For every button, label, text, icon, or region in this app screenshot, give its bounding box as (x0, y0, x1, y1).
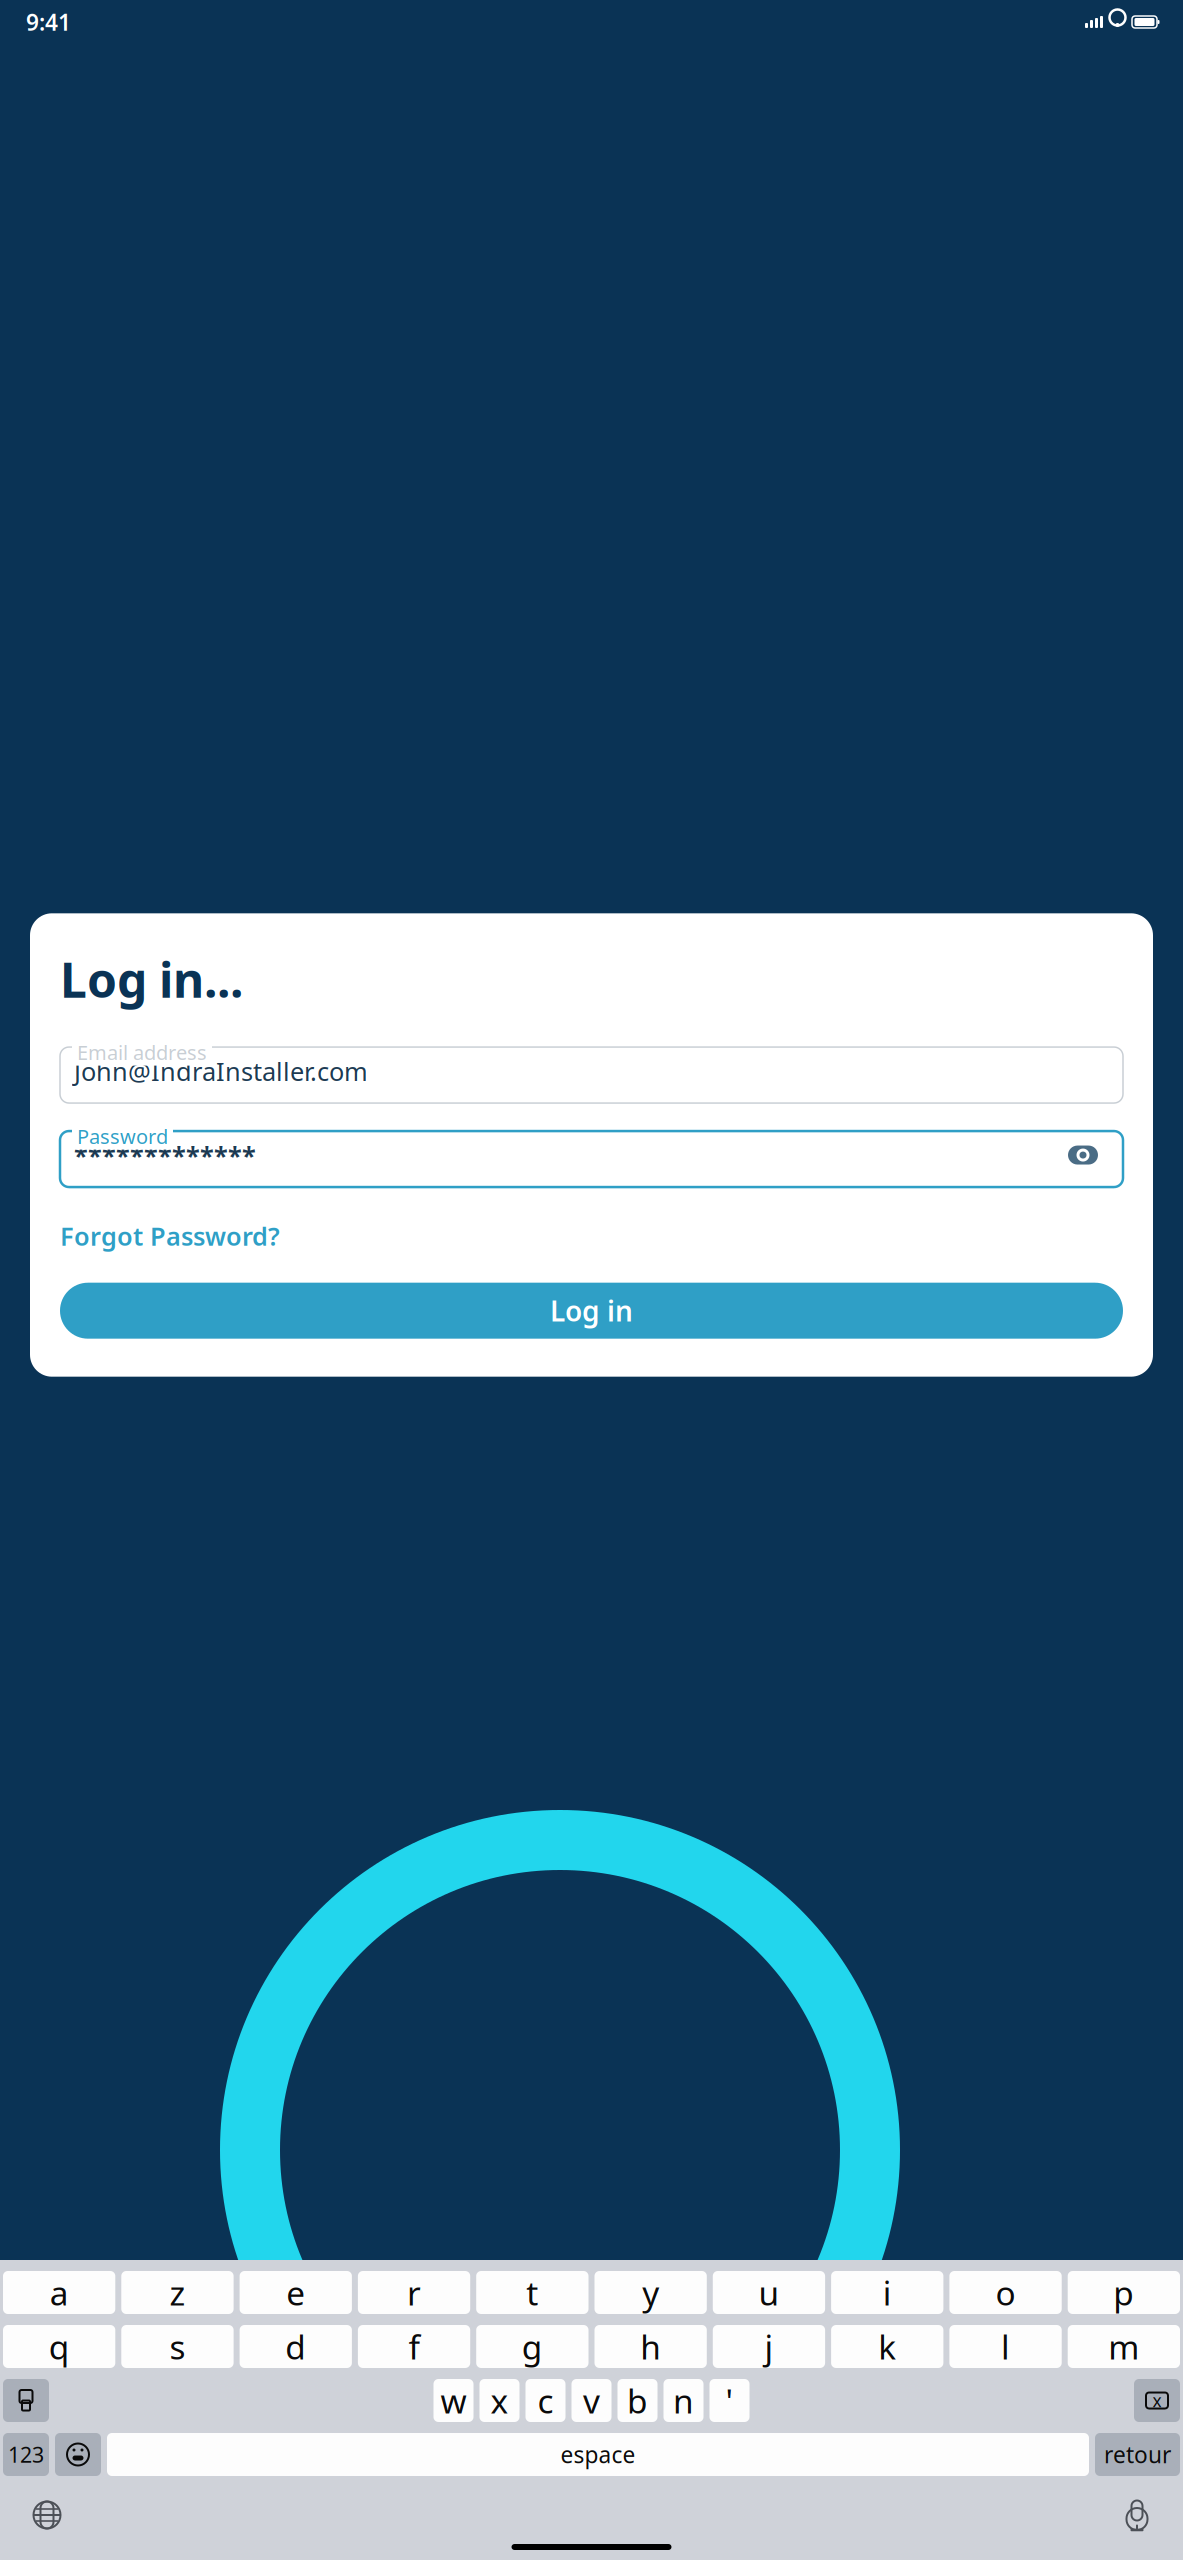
staticText: Forgot Password? (60, 1219, 280, 1253)
button[interactable]: u (713, 2271, 825, 2314)
staticText: l (1001, 2324, 1010, 2369)
button[interactable]: h (594, 2325, 707, 2368)
staticText: espace (560, 2439, 635, 2469)
button[interactable]: g (476, 2325, 588, 2368)
button[interactable]: i (831, 2271, 943, 2314)
staticText: t (526, 2270, 538, 2315)
button[interactable]: s (121, 2325, 234, 2368)
staticText: d (285, 2324, 306, 2369)
button[interactable]: z (121, 2271, 234, 2314)
staticText: c (537, 2378, 553, 2423)
button[interactable]: b (617, 2379, 657, 2422)
staticText: f (409, 2324, 420, 2369)
button[interactable]: Shift (3, 2379, 49, 2422)
button[interactable]: d (240, 2325, 352, 2368)
button[interactable]: j (713, 2325, 825, 2368)
button[interactable]: Emoji (55, 2433, 101, 2476)
staticText: x (1152, 2389, 1161, 2412)
staticText: s (169, 2324, 185, 2369)
staticText: j (764, 2324, 773, 2369)
button[interactable]: Forgot Password? (60, 1213, 280, 1259)
button[interactable]: e (240, 2271, 352, 2314)
button[interactable]: n (663, 2379, 703, 2422)
button[interactable]: r (358, 2271, 470, 2314)
button[interactable]: c (525, 2379, 565, 2422)
button[interactable]: o (949, 2271, 1062, 2314)
button[interactable]: w (433, 2379, 473, 2422)
staticText: w (440, 2378, 466, 2423)
button[interactable]: v (571, 2379, 611, 2422)
staticText: Log in... (60, 947, 243, 1011)
staticText: 123 (8, 2440, 44, 2469)
staticText: r (407, 2270, 421, 2315)
button[interactable]: x (479, 2379, 519, 2422)
button[interactable]: q (3, 2325, 115, 2368)
staticText: retour (1104, 2439, 1171, 2469)
button[interactable]: f (358, 2325, 470, 2368)
staticText: ************* (74, 1138, 256, 1172)
staticText: a (50, 2270, 69, 2315)
staticText: Log in (550, 1292, 633, 1329)
button[interactable]: ' (709, 2379, 749, 2422)
button[interactable]: k (831, 2325, 943, 2368)
staticText: n (673, 2378, 694, 2423)
button[interactable]: 123 (3, 2433, 49, 2476)
staticText: i (883, 2270, 892, 2315)
button[interactable]: Next keyboard (24, 2492, 70, 2538)
button[interactable]: Backspace (1134, 2379, 1180, 2422)
button[interactable]: a (3, 2271, 115, 2314)
staticText: ' (725, 2378, 733, 2423)
staticText: Email address (77, 1039, 207, 1066)
staticText: q (49, 2324, 70, 2369)
staticText: y (642, 2270, 659, 2315)
staticText: u (758, 2270, 779, 2315)
staticText: e (286, 2270, 305, 2315)
button[interactable]: m (1068, 2325, 1180, 2368)
button[interactable]: y (594, 2271, 707, 2314)
staticText: z (169, 2270, 185, 2315)
staticText: h (640, 2324, 661, 2369)
button[interactable]: espace (107, 2433, 1089, 2476)
button[interactable]: Log in (60, 1283, 1123, 1339)
staticText: John@IndraInstaller.com (74, 1054, 368, 1088)
button[interactable]: retour (1095, 2433, 1180, 2476)
staticText: m (1108, 2324, 1139, 2369)
button[interactable]: Dictation (1115, 2490, 1159, 2540)
staticText: g (522, 2324, 543, 2369)
button[interactable]: Show password (1057, 1136, 1109, 1174)
button[interactable]: t (476, 2271, 588, 2314)
staticText: v (583, 2378, 600, 2423)
staticText: o (995, 2270, 1015, 2315)
staticText: 9:41 (26, 7, 71, 37)
staticText: b (627, 2378, 648, 2423)
staticText: x (490, 2378, 508, 2423)
staticText: k (878, 2324, 896, 2369)
button[interactable]: p (1068, 2271, 1180, 2314)
staticText: p (1113, 2270, 1134, 2315)
staticText: Password (77, 1123, 168, 1150)
button[interactable]: l (949, 2325, 1062, 2368)
